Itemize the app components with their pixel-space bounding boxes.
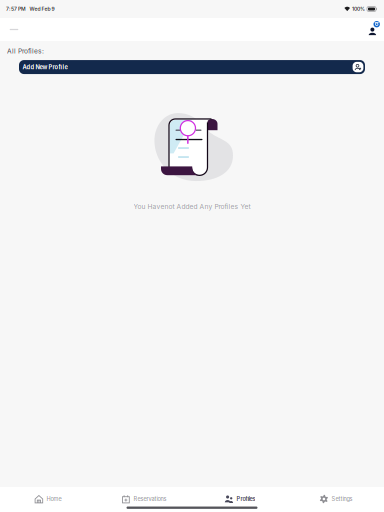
- staticText: You Havenot Added Any Profiles Yet: [133, 203, 250, 211]
- staticText: 7:57 PM: [6, 6, 26, 12]
- staticText: All Profiles:: [7, 47, 44, 55]
- button[interactable]: Account: [366, 22, 380, 37]
- staticText: Profiles: [236, 496, 255, 502]
- button[interactable]: Add New Profile: [19, 60, 365, 74]
- button[interactable]: Settings: [288, 494, 384, 503]
- button[interactable]: Back: [6, 22, 22, 36]
- button[interactable]: Profiles: [192, 494, 288, 503]
- staticText: Wed Feb 9: [29, 6, 54, 12]
- staticText: Add New Profile: [22, 64, 67, 70]
- staticText: 100%: [352, 6, 365, 12]
- staticText: Home: [46, 496, 61, 502]
- staticText: Settings: [331, 496, 352, 502]
- staticText: Reservations: [133, 496, 166, 502]
- button[interactable]: Home: [0, 494, 96, 503]
- button[interactable]: Reservations: [96, 494, 192, 503]
